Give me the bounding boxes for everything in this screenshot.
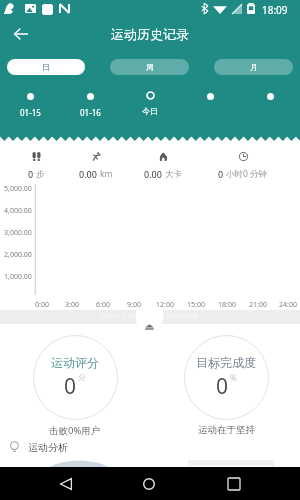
staticText: 月 <box>250 62 258 72</box>
staticText: 分 <box>78 372 86 382</box>
staticText: 01-15 <box>20 107 41 118</box>
button[interactable]: Back <box>51 467 81 500</box>
button[interactable]: 今日 <box>120 88 180 118</box>
staticText: 21:00 <box>249 300 267 310</box>
staticText: 0 <box>28 168 36 180</box>
button[interactable]: Recents <box>219 467 249 500</box>
staticText: 3:00 <box>65 300 79 310</box>
button[interactable]: 运动分析 <box>0 438 300 456</box>
staticText: 今日 <box>142 106 158 116</box>
staticText: 15:00 <box>187 300 205 310</box>
staticText: 0.00 <box>144 168 165 180</box>
staticText: 0 <box>216 372 229 401</box>
staticText: 18:09 <box>262 3 288 17</box>
button[interactable]: 周 <box>110 59 189 75</box>
staticText: 5,000.00 <box>4 184 32 194</box>
button[interactable]: 月 <box>214 59 293 75</box>
staticText: 1,000.00 <box>4 272 32 282</box>
staticText: % <box>230 372 237 383</box>
staticText: 3,000.00 <box>4 228 32 238</box>
staticText: 运动历史记录 <box>111 26 189 42</box>
staticText: 日 <box>42 62 50 72</box>
button[interactable]: 运动评分 <box>25 335 125 440</box>
staticText: 击败0%用户 <box>49 424 101 437</box>
staticText: km <box>100 168 113 180</box>
staticText: 运动分析 <box>28 441 68 454</box>
button[interactable]: 目标完成度 <box>176 335 276 440</box>
staticText: 0:00 <box>35 300 49 310</box>
button[interactable]: 01-15 <box>0 88 60 118</box>
staticText: 6:00 <box>96 300 110 310</box>
button[interactable]: Collapse <box>136 310 163 331</box>
staticText: 12:00 <box>156 300 174 310</box>
staticText: 24:00 <box>279 300 297 310</box>
button[interactable]: date <box>240 88 300 118</box>
button[interactable]: Back <box>6 18 36 50</box>
staticText: 运动评分 <box>51 355 99 370</box>
staticText: 01-16 <box>80 107 101 118</box>
staticText: 大卡 <box>165 169 182 180</box>
staticText: 运动在于坚持 <box>198 424 255 436</box>
button[interactable]: date <box>180 88 240 118</box>
staticText: 步 <box>36 169 45 180</box>
staticText: 0.00 <box>79 168 100 180</box>
staticText: 继续一个目标，继续坚持达成目标 <box>101 312 199 320</box>
button[interactable]: Home <box>134 467 164 500</box>
staticText: 4,000.00 <box>4 206 32 216</box>
button[interactable]: 01-16 <box>60 88 120 118</box>
staticText: 9:00 <box>127 300 141 310</box>
staticText: 2,000.00 <box>4 250 32 260</box>
staticText: 18:00 <box>218 300 236 310</box>
staticText: 目标完成度 <box>196 355 256 370</box>
staticText: 0 <box>64 372 77 401</box>
button[interactable]: 日 <box>7 59 85 75</box>
staticText: 0 <box>218 168 226 180</box>
staticText: 小时0 分钟 <box>226 168 268 180</box>
staticText: 周 <box>146 62 154 72</box>
